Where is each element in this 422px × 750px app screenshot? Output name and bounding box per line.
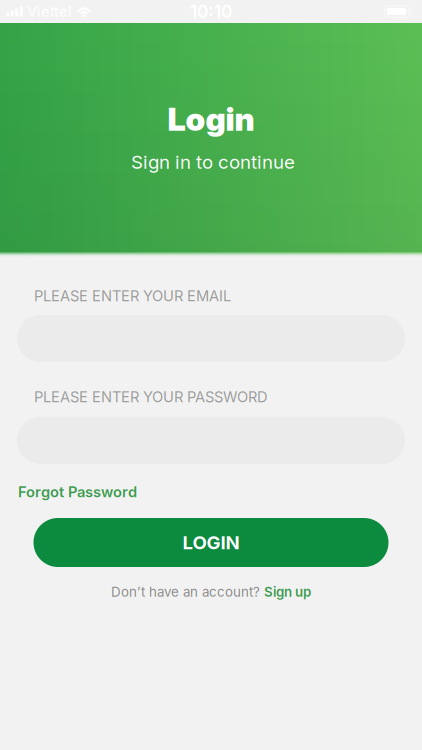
staticText: Don’t have an account? bbox=[111, 584, 260, 600]
staticText: LOGIN bbox=[182, 531, 239, 553]
button[interactable]: LOGIN bbox=[33, 518, 388, 567]
staticText: Sign in to continue bbox=[131, 151, 295, 173]
button[interactable]: Forgot Password bbox=[18, 483, 137, 501]
staticText: PLEASE ENTER YOUR PASSWORD bbox=[34, 388, 268, 406]
button[interactable]: Sign up bbox=[264, 584, 311, 600]
staticText: Forgot Password bbox=[18, 483, 137, 501]
staticText: Viettel bbox=[27, 3, 72, 20]
staticText: PLEASE ENTER YOUR EMAIL bbox=[34, 287, 231, 305]
staticText: Login bbox=[167, 100, 254, 138]
staticText: 10:10 bbox=[190, 1, 232, 22]
staticText: Sign up bbox=[264, 584, 311, 600]
